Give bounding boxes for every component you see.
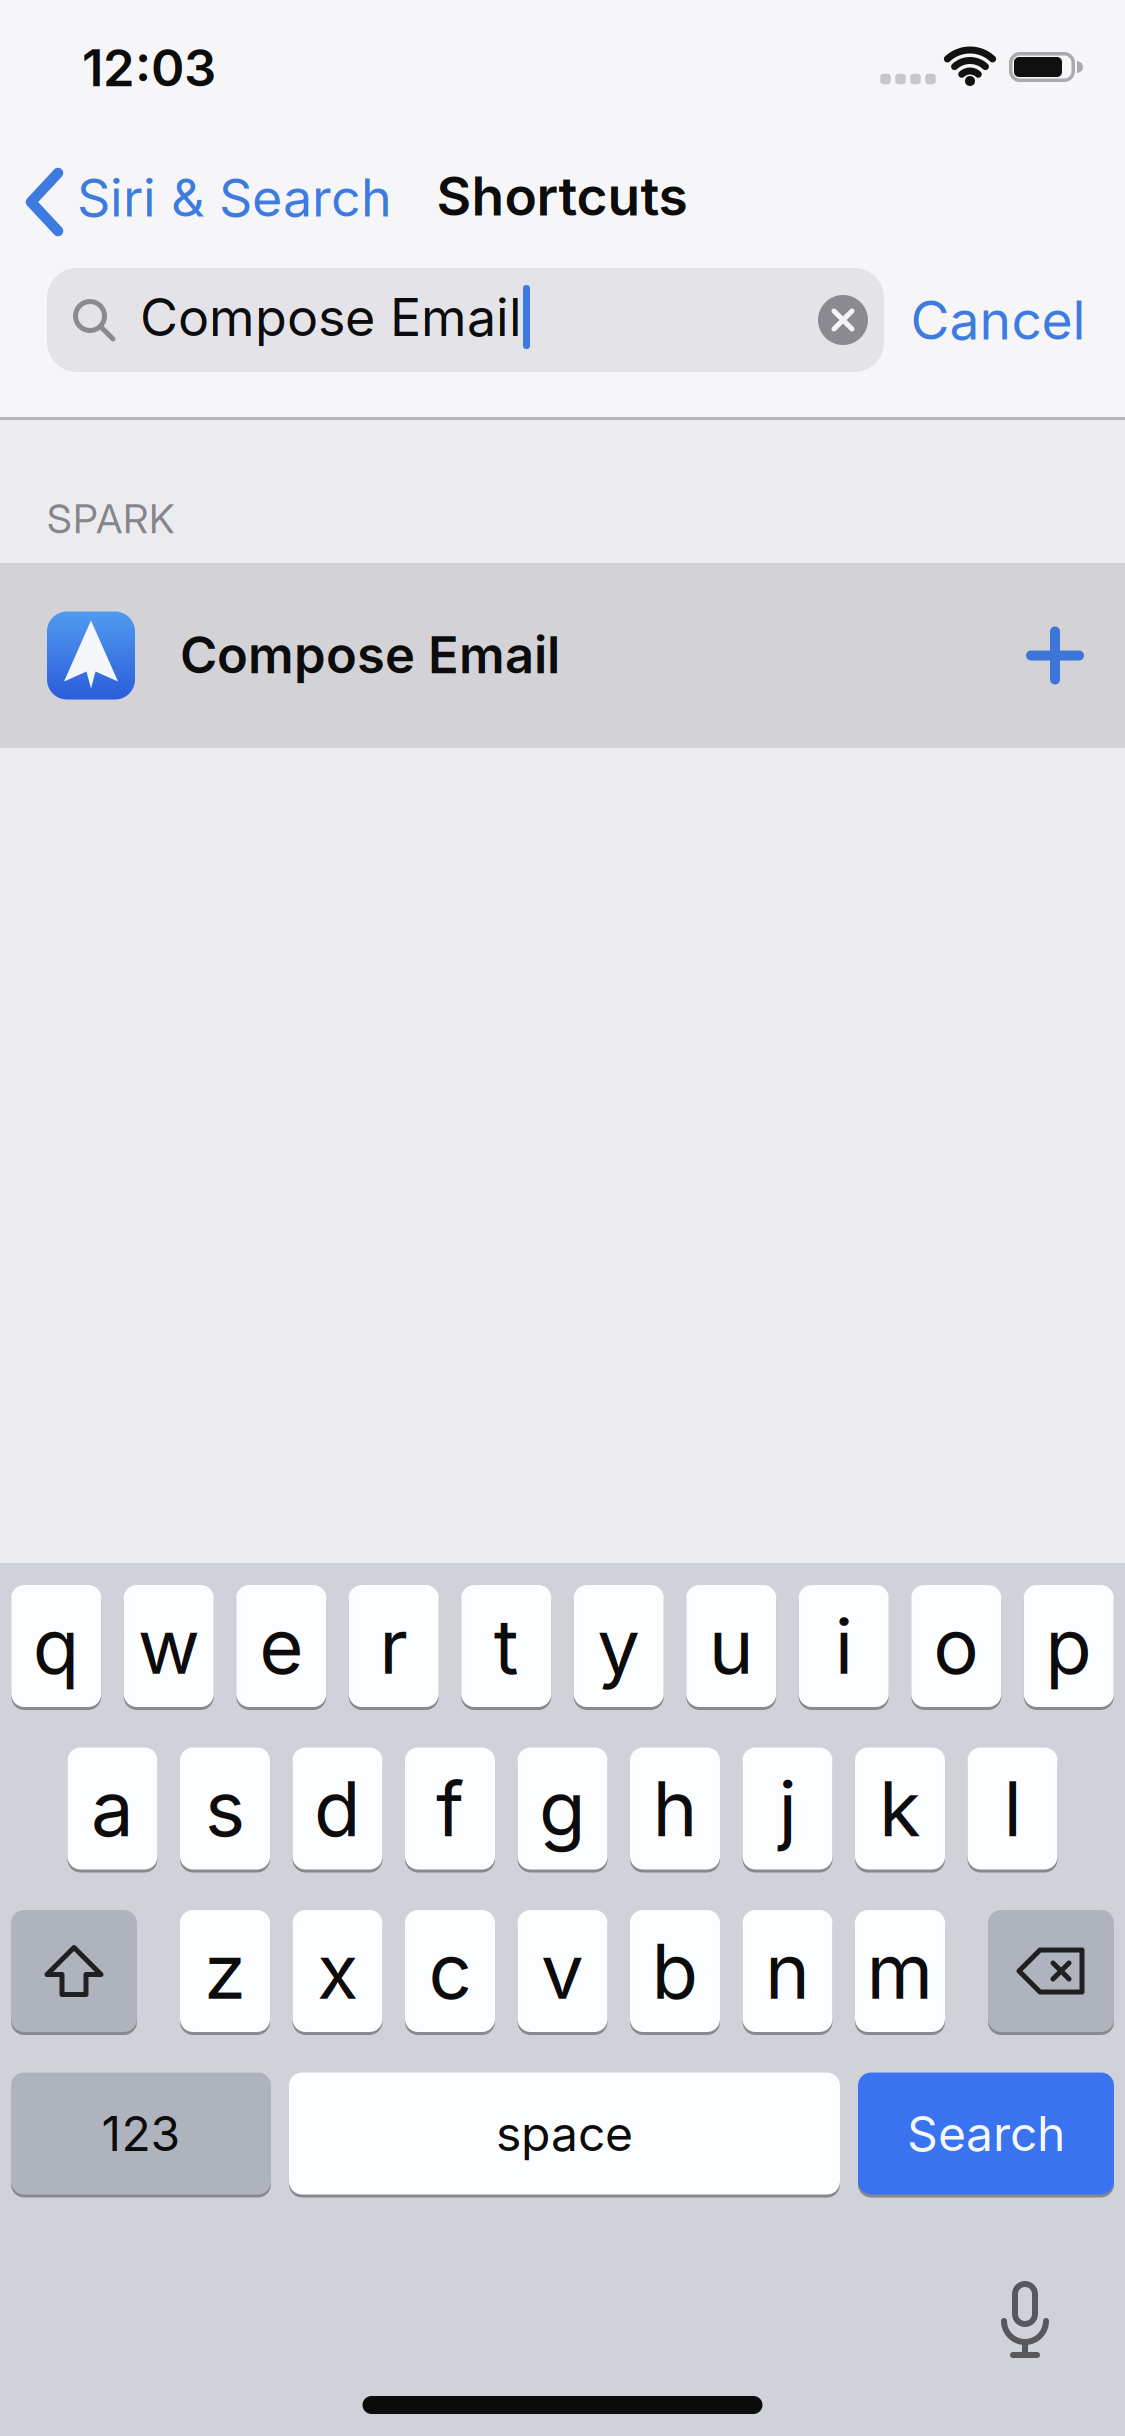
staticText: i — [835, 1601, 853, 1691]
staticText: u — [709, 1601, 754, 1691]
button[interactable]: s — [180, 1747, 270, 1869]
button[interactable]: o — [911, 1585, 1001, 1707]
staticText: a — [91, 1764, 134, 1853]
button[interactable]: r — [349, 1585, 439, 1707]
staticText: w — [138, 1601, 200, 1691]
button[interactable]: p — [1024, 1585, 1114, 1707]
button[interactable]: u — [686, 1585, 776, 1707]
button[interactable]: Dictation — [1000, 2281, 1050, 2359]
staticText: d — [314, 1764, 361, 1853]
button[interactable]: Compose Email — [0, 563, 1125, 748]
button[interactable]: w — [124, 1585, 214, 1707]
staticText: j — [778, 1764, 796, 1853]
button[interactable]: h — [630, 1747, 720, 1869]
button[interactable]: v — [517, 1910, 607, 2032]
button[interactable]: g — [517, 1747, 607, 1869]
button[interactable]: t — [461, 1585, 551, 1707]
staticText: t — [494, 1601, 519, 1691]
staticText: o — [933, 1601, 979, 1691]
staticText: m — [866, 1926, 933, 2016]
staticText: 12:03 — [82, 38, 216, 98]
staticText: s — [205, 1764, 245, 1853]
button[interactable]: Back — [25, 168, 340, 236]
staticText: Siri & Search — [77, 167, 392, 228]
button[interactable]: j — [742, 1747, 832, 1869]
button[interactable]: k — [855, 1747, 945, 1869]
staticText: l — [1003, 1764, 1021, 1853]
button[interactable]: m — [855, 1910, 945, 2032]
staticText: r — [379, 1601, 408, 1691]
staticText: b — [651, 1926, 698, 2016]
staticText: q — [33, 1601, 80, 1691]
staticText: z — [204, 1926, 246, 2016]
button[interactable]: y — [574, 1585, 664, 1707]
button[interactable]: i — [799, 1585, 889, 1707]
staticText: p — [1045, 1601, 1092, 1691]
button[interactable]: space — [289, 2072, 840, 2194]
button[interactable]: f — [405, 1747, 495, 1869]
button[interactable]: Clear text — [818, 295, 868, 345]
staticText: Cancel — [910, 288, 1085, 351]
staticText: SPARK — [47, 495, 175, 542]
button[interactable]: d — [292, 1747, 382, 1869]
staticText: y — [597, 1601, 640, 1691]
button[interactable]: a — [67, 1747, 157, 1869]
button[interactable]: n — [742, 1910, 832, 2032]
staticText: space — [496, 2105, 633, 2162]
staticText: c — [428, 1926, 471, 2016]
button[interactable]: b — [630, 1910, 720, 2032]
button[interactable]: Search — [858, 2072, 1114, 2194]
button[interactable]: e — [236, 1585, 326, 1707]
staticText: x — [317, 1926, 358, 2016]
staticText: k — [879, 1764, 921, 1853]
staticText: Compose Email — [140, 286, 522, 348]
button[interactable]: Compose Email — [47, 268, 884, 372]
button[interactable]: l — [967, 1747, 1057, 1869]
staticText: Compose Email — [180, 625, 560, 685]
button[interactable]: Shift — [11, 1910, 137, 2032]
staticText: h — [652, 1764, 697, 1853]
staticText: v — [541, 1926, 584, 2016]
button[interactable]: x — [292, 1910, 382, 2032]
staticText: f — [436, 1764, 464, 1853]
staticText: Shortcuts — [436, 164, 687, 227]
staticText: n — [765, 1926, 810, 2016]
staticText: Search — [907, 2105, 1065, 2162]
staticText: 123 — [101, 2105, 180, 2162]
staticText: g — [539, 1764, 586, 1853]
button[interactable]: z — [180, 1910, 270, 2032]
button[interactable]: Delete — [988, 1910, 1114, 2032]
button[interactable]: 123 — [11, 2072, 271, 2194]
button[interactable]: Cancel — [910, 288, 1085, 351]
button[interactable]: c — [405, 1910, 495, 2032]
button[interactable]: q — [11, 1585, 101, 1707]
staticText: e — [259, 1601, 303, 1691]
